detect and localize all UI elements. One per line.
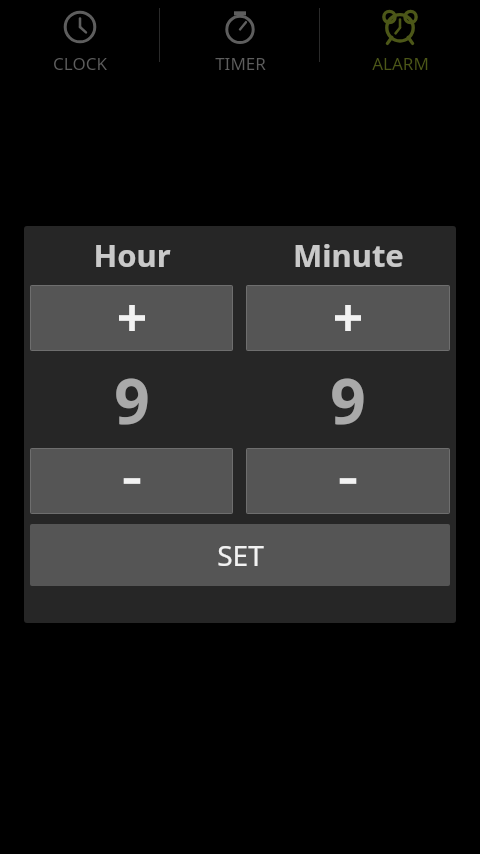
other: Clock (60, 7, 100, 47)
staticText: TIMER (215, 52, 266, 75)
other: Timer (220, 7, 260, 47)
button[interactable]: Timer (160, 0, 320, 80)
staticText: CLOCK (53, 52, 107, 75)
staticText: SET (217, 536, 264, 574)
button[interactable]: Decrease minute (247, 449, 449, 513)
button[interactable]: Clock (0, 0, 160, 80)
other: Alarm (380, 7, 420, 47)
button[interactable]: Alarm (320, 0, 480, 80)
staticText: 9 (330, 358, 366, 442)
staticText: ALARM (372, 52, 429, 75)
staticText: Hour (93, 234, 171, 276)
button[interactable]: Decrease hour (31, 449, 232, 513)
button[interactable]: Increase hour (31, 286, 232, 350)
staticText: Minute (293, 234, 404, 276)
staticText: 9 (114, 358, 150, 442)
button[interactable]: Increase minute (247, 286, 449, 350)
button[interactable]: SET (30, 524, 450, 586)
